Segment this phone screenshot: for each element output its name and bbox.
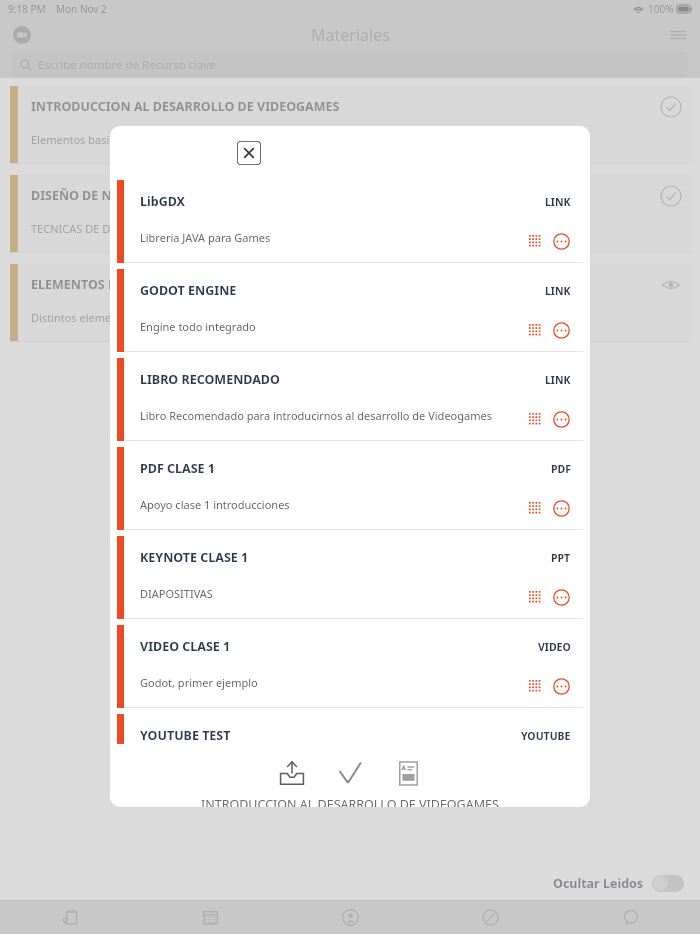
button[interactable]: ELEMENTOS ESE — [10, 264, 690, 342]
staticText: Elementos basicos n — [31, 132, 137, 147]
button[interactable]: LibGDX — [117, 180, 583, 263]
button[interactable]: Mas opciones — [551, 231, 571, 251]
button[interactable]: Mas opciones — [551, 676, 571, 696]
staticText: Distintos elementos — [31, 310, 134, 325]
staticText: VIDEO CLASE 1 — [140, 638, 231, 655]
button[interactable]: Cuadricula — [525, 498, 545, 518]
button[interactable]: Mas opciones — [551, 498, 571, 518]
button[interactable]: INTRODUCCION AL DESARROLLO DE VIDEOGAMES — [10, 86, 690, 164]
button[interactable]: Mas opciones — [551, 409, 571, 429]
staticText: LINK — [545, 195, 571, 209]
button[interactable]: Escribe nombre de Recurso clave — [12, 52, 688, 78]
staticText: Godot, primer ejemplo — [140, 675, 258, 690]
staticText: LibGDX — [140, 193, 185, 210]
button[interactable]: Cuadricula — [525, 231, 545, 251]
staticText: PDF CLASE 1 — [140, 460, 215, 477]
button[interactable]: Cuadricula — [525, 587, 545, 607]
staticText: KEYNOTE CLASE 1 — [140, 549, 249, 566]
button[interactable]: Mas opciones — [551, 587, 571, 607]
staticText: GODOT ENGINE — [140, 282, 237, 299]
staticText: ELEMENTOS ESE — [31, 276, 129, 293]
staticText: PPT — [551, 551, 571, 565]
button[interactable]: GODOT ENGINE — [117, 269, 583, 352]
button[interactable]: Ocultar Leidos — [553, 875, 684, 892]
staticText: Apoyo clase 1 introducciones — [140, 497, 290, 512]
button[interactable]: KEYNOTE CLASE 1 — [117, 536, 583, 619]
button[interactable]: Subir — [269, 750, 315, 796]
button[interactable]: Calendario — [140, 901, 280, 934]
button[interactable]: DISEÑO DE NIVI — [10, 175, 690, 253]
staticText: LINK — [545, 373, 571, 387]
staticText: LIBRO RECOMENDADO — [140, 371, 280, 388]
staticText: LINK — [545, 284, 571, 298]
staticText: Materiales — [311, 24, 390, 46]
staticText: INTRODUCCION AL DESARROLLO DE VIDEOGAMES — [31, 98, 340, 115]
staticText: YOUTUBE TEST — [140, 727, 231, 744]
staticText: Ocultar Leidos — [553, 875, 644, 892]
button[interactable]: LIBRO RECOMENDADO — [117, 358, 583, 441]
staticText: YOUTUBE — [521, 729, 571, 743]
button[interactable]: Mas opciones — [551, 320, 571, 340]
staticText: 100% — [648, 2, 674, 16]
button[interactable]: Documento — [385, 750, 431, 796]
button[interactable]: Cuadricula — [525, 676, 545, 696]
staticText: DISEÑO DE NIVI — [31, 187, 130, 204]
button[interactable]: Cerrar — [237, 141, 261, 165]
button[interactable]: VIDEO CLASE 1 — [117, 625, 583, 708]
staticText: 9:18 PM — [8, 2, 46, 16]
button[interactable]: Video — [10, 23, 34, 47]
staticText: TECNICAS DE DISEÑ — [31, 221, 135, 236]
button[interactable]: PDF CLASE 1 — [117, 447, 583, 530]
staticText: Escribe nombre de Recurso clave — [38, 57, 216, 73]
staticText: Libreria JAVA para Games — [140, 230, 271, 245]
button[interactable]: Marcar leido — [327, 750, 373, 796]
staticText: Engine todo integrado — [140, 319, 256, 334]
staticText: PDF — [551, 462, 571, 476]
button[interactable]: Perfil — [280, 901, 420, 934]
button[interactable]: Menu — [666, 23, 690, 47]
button[interactable]: Cuadricula — [525, 409, 545, 429]
staticText: VIDEO — [538, 640, 571, 654]
staticText: INTRODUCCION AL DESARROLLO DE VIDEOGAMES — [201, 796, 499, 807]
staticText: Mon Nov 2 — [56, 2, 107, 16]
staticText: Libro Recomendado para introducirnos al … — [140, 408, 492, 423]
staticText: DIAPOSITIVAS — [140, 586, 213, 601]
button[interactable]: Cuadricula — [525, 320, 545, 340]
button[interactable]: YOUTUBE TEST — [117, 714, 583, 744]
